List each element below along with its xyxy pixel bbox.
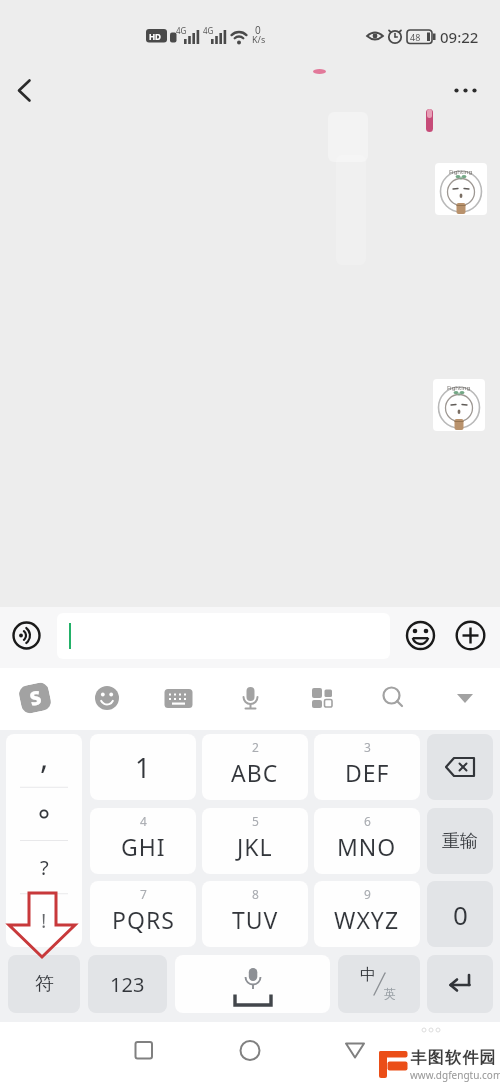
button[interactable]: [10, 619, 43, 652]
staticText: 6: [364, 813, 371, 829]
staticText: 123: [110, 971, 145, 998]
button[interactable]: S: [17, 681, 53, 715]
button[interactable]: 3: [314, 734, 420, 800]
staticText: www.dgfengtu.com: [410, 1068, 500, 1082]
staticText: 7: [140, 886, 147, 902]
staticText: HD: [149, 31, 161, 42]
staticText: 0: [453, 897, 468, 932]
staticText: ?: [40, 854, 49, 881]
button[interactable]: [427, 955, 493, 1013]
staticText: MNO: [337, 831, 397, 862]
button[interactable]: 5: [202, 808, 308, 874]
staticText: WXYZ: [334, 904, 400, 935]
button[interactable]: 2: [202, 734, 308, 800]
button[interactable]: 6: [314, 808, 420, 874]
staticText: K/s: [252, 33, 266, 45]
staticText: ABC: [231, 757, 279, 788]
button[interactable]: 重输: [427, 808, 493, 874]
button[interactable]: [175, 955, 330, 1013]
button[interactable]: [332, 1030, 378, 1076]
button[interactable]: [84, 676, 132, 722]
button[interactable]: [155, 676, 203, 722]
staticText: DEF: [345, 757, 390, 788]
staticText: 48: [410, 31, 421, 43]
staticText: 9: [364, 886, 371, 902]
staticText: 英: [384, 986, 396, 1001]
button[interactable]: [454, 619, 487, 652]
staticText: S: [27, 684, 44, 712]
staticText: 重输: [442, 830, 478, 853]
staticText: Fighting: [447, 384, 471, 392]
staticText: 09:22: [440, 27, 479, 47]
button[interactable]: 8: [202, 881, 308, 947]
button[interactable]: 7: [90, 881, 196, 947]
button[interactable]: [297, 676, 345, 722]
button[interactable]: 9: [314, 881, 420, 947]
staticText: 符: [35, 972, 54, 996]
staticText: PQRS: [112, 904, 175, 935]
button[interactable]: 符: [8, 955, 80, 1013]
staticText: ,: [40, 736, 49, 778]
staticText: 5: [252, 813, 259, 829]
staticText: Fighting: [449, 168, 473, 176]
staticText: 8: [252, 886, 259, 902]
button[interactable]: 0: [427, 881, 493, 947]
button[interactable]: [439, 676, 487, 722]
button[interactable]: 中: [338, 955, 420, 1013]
staticText: 4G: [176, 25, 187, 36]
staticText: 中: [360, 965, 376, 985]
staticText: JKL: [237, 831, 273, 862]
button[interactable]: 4: [90, 808, 196, 874]
button[interactable]: [226, 676, 274, 722]
button[interactable]: [445, 75, 487, 107]
button[interactable]: [227, 1030, 273, 1076]
staticText: !: [41, 907, 47, 934]
button[interactable]: ,: [6, 734, 82, 947]
staticText: 丰图软件园: [410, 1048, 496, 1068]
staticText: 4: [140, 813, 147, 829]
button[interactable]: Fighting: [433, 379, 485, 431]
button[interactable]: [404, 619, 437, 652]
button[interactable]: Fighting: [435, 163, 487, 215]
staticText: TUV: [232, 904, 279, 935]
button[interactable]: [427, 734, 493, 800]
button[interactable]: 123: [88, 955, 167, 1013]
button[interactable]: [57, 613, 390, 659]
staticText: 4G: [203, 25, 214, 36]
button[interactable]: [120, 1030, 166, 1076]
staticText: 0: [255, 23, 261, 37]
button[interactable]: 1: [90, 734, 196, 800]
staticText: 2: [252, 739, 259, 755]
staticText: 3: [364, 739, 371, 755]
button[interactable]: [8, 75, 48, 107]
staticText: GHI: [121, 831, 166, 862]
staticText: 1: [135, 749, 151, 786]
button[interactable]: [368, 676, 416, 722]
